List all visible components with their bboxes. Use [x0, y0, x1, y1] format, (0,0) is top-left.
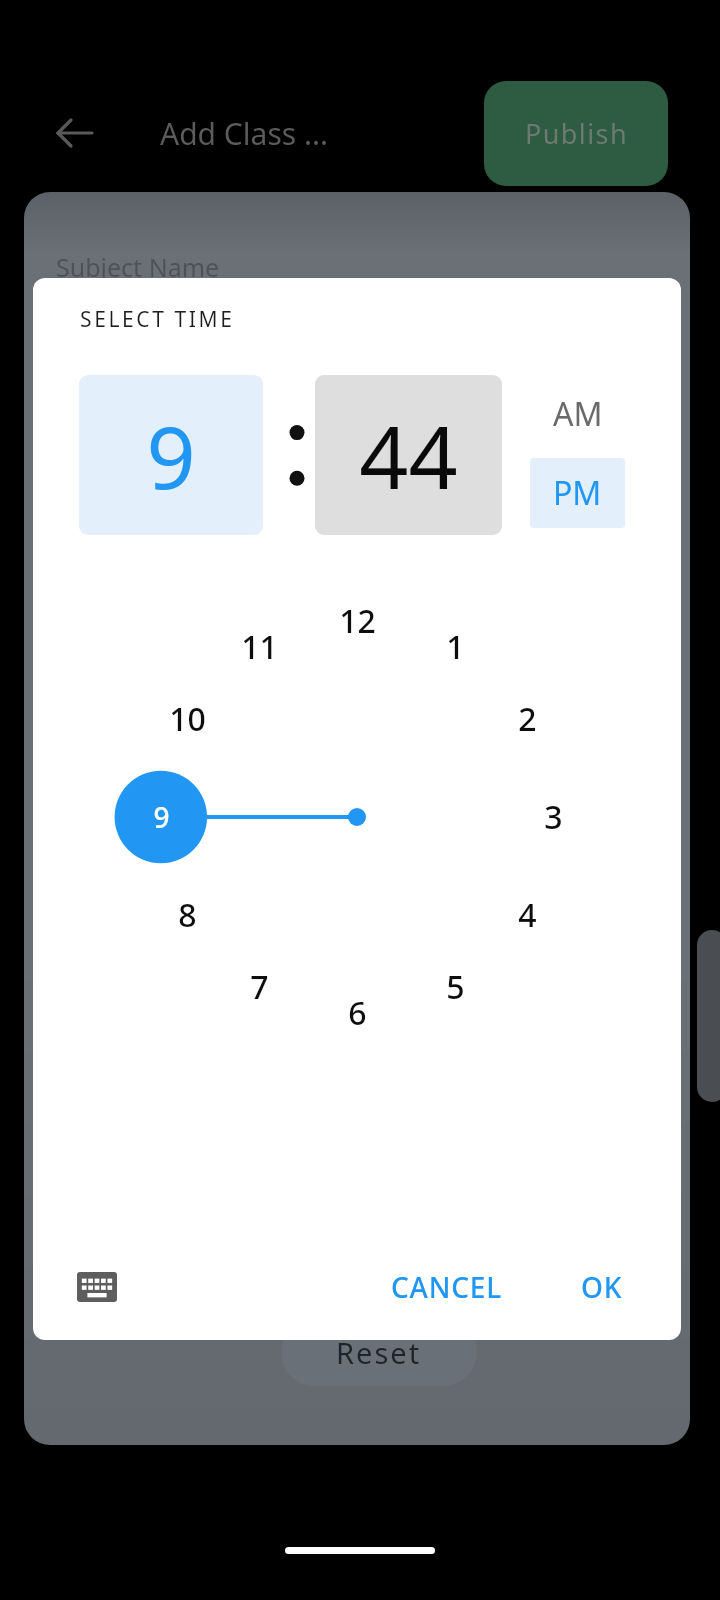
staticText: Publish [525, 115, 628, 152]
staticText: 4 [518, 893, 537, 937]
button[interactable]: 2 [496, 688, 558, 750]
staticText: 2 [518, 697, 537, 741]
staticText: 1 [446, 625, 465, 669]
staticText: 8 [178, 893, 197, 937]
button[interactable]: 10 [156, 688, 218, 750]
staticText: OK [581, 1268, 623, 1306]
button[interactable]: PM [530, 458, 625, 528]
button[interactable]: 4 [496, 884, 558, 946]
staticText: Add Class ... [160, 113, 329, 154]
button[interactable]: CANCEL [371, 1253, 521, 1321]
staticText: 11 [241, 625, 278, 669]
button[interactable]: 7 [228, 956, 290, 1018]
button[interactable]: OK [554, 1253, 650, 1321]
staticText: CANCEL [391, 1268, 502, 1306]
button[interactable]: Back [44, 102, 106, 164]
staticText: SELECT TIME [80, 305, 235, 334]
button[interactable]: 6 [326, 982, 388, 1044]
button[interactable]: 9 [79, 375, 263, 535]
button[interactable]: AM [530, 382, 625, 446]
staticText: PM [553, 471, 602, 515]
staticText: 44 [359, 397, 458, 514]
button[interactable]: 44 [315, 375, 502, 535]
staticText: Reset [336, 1333, 422, 1372]
staticText: AM [553, 392, 603, 436]
button[interactable]: Switch to text input [63, 1253, 131, 1321]
button[interactable]: Publish [484, 81, 668, 186]
button[interactable]: 8 [156, 884, 218, 946]
button[interactable]: 9 [130, 786, 192, 848]
staticText: 10 [169, 697, 206, 741]
staticText: 6 [348, 991, 367, 1035]
staticText: Subject Name [56, 250, 220, 284]
staticText: 9 [146, 397, 196, 514]
staticText: 5 [446, 965, 465, 1009]
staticText: 12 [339, 599, 376, 643]
button[interactable]: 12 [326, 590, 388, 652]
staticText: 3 [544, 795, 563, 839]
staticText: 9 [153, 798, 170, 836]
button[interactable]: 11 [228, 616, 290, 678]
button[interactable]: 1 [424, 616, 486, 678]
button[interactable]: 5 [424, 956, 486, 1018]
staticText: 7 [250, 965, 269, 1009]
button[interactable]: 3 [522, 786, 584, 848]
button[interactable]: Reset [281, 1318, 477, 1386]
